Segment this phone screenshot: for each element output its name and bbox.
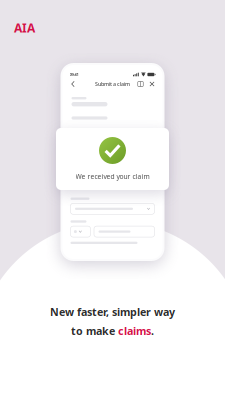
- staticText: 09:41: [69, 72, 78, 77]
- staticText: .: [151, 324, 154, 338]
- button[interactable]: Guide: [136, 79, 145, 88]
- staticText: Submit a claim: [95, 80, 130, 88]
- staticText: claims: [118, 324, 151, 338]
- staticText: to make: [71, 324, 118, 338]
- staticText: We received your claim: [75, 172, 149, 181]
- button[interactable]: Back: [68, 79, 77, 88]
- staticText: New faster, simpler way: [50, 305, 175, 319]
- staticText: AIA: [14, 20, 35, 36]
- button[interactable]: Close: [147, 79, 156, 88]
